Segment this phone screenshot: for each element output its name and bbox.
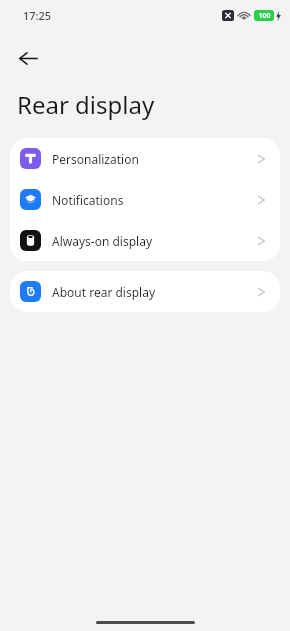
button[interactable]: Back bbox=[8, 38, 48, 78]
button[interactable]: Always-on display bbox=[10, 220, 280, 261]
button[interactable]: Notifications bbox=[10, 179, 280, 220]
staticText: Always-on display bbox=[52, 233, 153, 249]
button[interactable]: About rear display bbox=[10, 271, 280, 312]
button[interactable]: Personalization bbox=[10, 138, 280, 179]
staticText: Notifications bbox=[52, 192, 124, 208]
staticText: Personalization bbox=[52, 151, 139, 167]
staticText: 17:25 bbox=[23, 8, 52, 23]
staticText: About rear display bbox=[52, 284, 156, 300]
staticText: Rear display bbox=[17, 88, 155, 121]
staticText: 100 bbox=[258, 11, 271, 21]
